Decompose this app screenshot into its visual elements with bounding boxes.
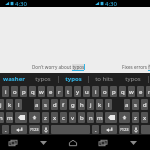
button[interactable]: Symbols xyxy=(29,125,40,134)
button[interactable]: Home xyxy=(58,135,88,150)
button[interactable]: h xyxy=(78,99,85,110)
staticText: c xyxy=(62,114,65,122)
staticText: f xyxy=(62,101,65,109)
button[interactable]: typos xyxy=(59,73,88,85)
button[interactable]: a xyxy=(124,99,130,110)
button[interactable]: Back xyxy=(28,135,58,150)
button[interactable]: Recent apps xyxy=(0,135,28,150)
button[interactable]: Symbols xyxy=(119,125,130,134)
button[interactable]: z xyxy=(42,112,49,123)
button[interactable]: s xyxy=(42,99,49,110)
button[interactable]: i xyxy=(2,86,9,97)
staticText: . xyxy=(5,126,7,134)
button[interactable]: v xyxy=(69,112,76,123)
button[interactable]: e xyxy=(47,86,54,97)
button[interactable]: Enter xyxy=(11,125,27,134)
button[interactable]: Backspace xyxy=(15,112,27,123)
staticText: typos xyxy=(125,75,141,83)
staticText: ?123 xyxy=(30,127,39,132)
button[interactable]: Voice input xyxy=(132,125,139,134)
button[interactable]: t xyxy=(65,86,72,97)
button[interactable]: y xyxy=(74,86,81,97)
staticText: Fixes errors for you xyxy=(122,64,150,70)
button[interactable]: Shift xyxy=(119,112,130,123)
staticText: a xyxy=(125,101,129,109)
button[interactable]: w xyxy=(128,86,135,97)
button[interactable]: n xyxy=(87,112,94,123)
button[interactable]: Backspace xyxy=(105,112,117,123)
button[interactable]: f xyxy=(60,99,67,110)
staticText: to hits xyxy=(95,75,113,83)
staticText: z xyxy=(134,114,137,122)
button[interactable]: Enter xyxy=(101,125,117,134)
button[interactable]: Period xyxy=(2,125,9,134)
button[interactable]: washer xyxy=(0,73,28,85)
button[interactable]: n xyxy=(0,112,4,123)
staticText: typos xyxy=(65,75,82,83)
button[interactable]: Recent apps xyxy=(88,135,118,150)
staticText: a xyxy=(35,101,39,109)
staticText: s xyxy=(134,101,137,109)
button[interactable]: to hits xyxy=(89,73,118,85)
staticText: h xyxy=(80,101,84,109)
button[interactable]: l xyxy=(15,99,22,110)
button[interactable]: c xyxy=(60,112,67,123)
staticText: o xyxy=(103,88,107,96)
button[interactable]: r xyxy=(56,86,63,97)
button[interactable]: Voice input xyxy=(42,125,49,134)
button[interactable]: m xyxy=(6,112,13,123)
staticText: t xyxy=(67,88,70,96)
button[interactable]: s xyxy=(132,99,139,110)
button[interactable]: o xyxy=(11,86,18,97)
button[interactable]: p xyxy=(110,86,117,97)
button[interactable]: d xyxy=(141,99,148,110)
button[interactable]: j xyxy=(0,99,4,110)
staticText: b xyxy=(80,114,84,122)
button[interactable]: b xyxy=(78,112,85,123)
button[interactable]: x xyxy=(141,112,148,123)
button[interactable]: a xyxy=(34,99,40,110)
staticText: j xyxy=(0,101,2,109)
button[interactable]: q xyxy=(119,86,126,97)
staticText: w xyxy=(39,88,44,96)
button[interactable]: u xyxy=(83,86,90,97)
staticText: k xyxy=(8,101,12,109)
button[interactable]: Shift xyxy=(29,112,40,123)
staticText: x xyxy=(143,114,147,122)
staticText: 4:30 xyxy=(105,0,117,7)
button[interactable]: m xyxy=(96,112,103,123)
button[interactable]: x xyxy=(51,112,58,123)
button[interactable]: Period xyxy=(92,125,99,134)
button[interactable]: k xyxy=(96,99,103,110)
button[interactable]: i xyxy=(92,86,99,97)
button[interactable]: w xyxy=(38,86,45,97)
button[interactable]: g xyxy=(69,99,76,110)
staticText: r xyxy=(148,88,150,96)
staticText: n xyxy=(89,114,93,122)
staticText: 4:30 xyxy=(15,0,27,7)
button[interactable]: e xyxy=(137,86,144,97)
staticText: Don't worry about typos xyxy=(32,64,85,70)
button[interactable]: z xyxy=(132,112,139,123)
staticText: p xyxy=(112,88,116,96)
button[interactable]: l xyxy=(105,99,112,110)
button[interactable]: o xyxy=(101,86,108,97)
button[interactable]: k xyxy=(6,99,13,110)
staticText: p xyxy=(22,88,26,96)
button[interactable]: typos xyxy=(28,73,58,85)
button[interactable]: r xyxy=(146,86,150,97)
staticText: w xyxy=(129,88,134,96)
staticText: q xyxy=(31,88,35,96)
button[interactable]: j xyxy=(87,99,94,110)
button[interactable]: typos xyxy=(118,73,148,85)
button[interactable]: q xyxy=(29,86,36,97)
button[interactable]: d xyxy=(51,99,58,110)
staticText: m xyxy=(97,114,103,122)
staticText: ?123 xyxy=(120,127,129,132)
button[interactable]: p xyxy=(20,86,27,97)
button[interactable]: Back xyxy=(118,135,148,150)
